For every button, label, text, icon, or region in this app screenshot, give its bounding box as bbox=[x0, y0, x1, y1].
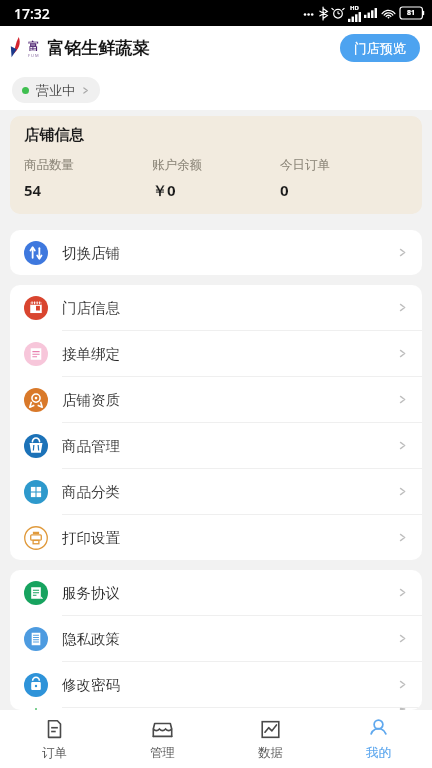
button[interactable]: 管理 bbox=[108, 710, 216, 768]
button[interactable]: 隐私政策 bbox=[10, 616, 422, 662]
staticText: 商品分类 bbox=[62, 483, 397, 501]
staticText: 订单 bbox=[42, 745, 67, 761]
button[interactable]: 门店信息 bbox=[10, 285, 422, 331]
staticText: 0 bbox=[280, 180, 289, 200]
staticText: 数据 bbox=[258, 745, 283, 761]
button[interactable]: 门店预览 bbox=[340, 34, 420, 62]
staticText: 我的 bbox=[366, 745, 391, 761]
staticText: 17:32 bbox=[14, 4, 50, 23]
staticText: 商品管理 bbox=[62, 437, 397, 455]
button[interactable]: 切换店铺 bbox=[10, 230, 422, 275]
staticText: 店铺资质 bbox=[62, 391, 397, 409]
button[interactable]: 店铺资质 bbox=[10, 377, 422, 423]
staticText: 富铭生鲜蔬菜 bbox=[47, 38, 149, 59]
staticText: F U M bbox=[28, 53, 39, 58]
button[interactable]: 订单 bbox=[0, 710, 108, 768]
staticText: 54 bbox=[24, 180, 42, 200]
button[interactable]: 打印设置 bbox=[10, 515, 422, 560]
button[interactable]: 商品分类 bbox=[10, 469, 422, 515]
button[interactable]: 修改密码 bbox=[10, 662, 422, 708]
staticText: 隐私政策 bbox=[62, 630, 397, 648]
staticText: 修改密码 bbox=[62, 676, 397, 694]
staticText: 门店信息 bbox=[62, 299, 397, 317]
staticText: 打印设置 bbox=[62, 529, 397, 547]
staticText: 今日订单 bbox=[280, 157, 330, 173]
staticText: 账户余额 bbox=[152, 157, 202, 173]
button[interactable]: 数据 bbox=[216, 710, 324, 768]
staticText: 门店预览 bbox=[354, 40, 406, 56]
staticText: 店铺信息 bbox=[24, 126, 84, 145]
staticText: 商品数量 bbox=[24, 157, 74, 173]
button[interactable]: 通知设置 bbox=[10, 708, 422, 710]
staticText: HD bbox=[350, 4, 359, 12]
staticText: 富 bbox=[28, 39, 39, 53]
button[interactable]: 我的 bbox=[324, 710, 432, 768]
staticText: 管理 bbox=[150, 745, 175, 761]
staticText: 营业中 bbox=[36, 82, 75, 98]
staticText: 81 bbox=[407, 8, 416, 18]
button[interactable]: 营业中 bbox=[12, 77, 100, 103]
staticText: ￥0 bbox=[152, 180, 176, 200]
button[interactable]: 服务协议 bbox=[10, 570, 422, 616]
staticText: 接单绑定 bbox=[62, 345, 397, 363]
button[interactable]: 商品管理 bbox=[10, 423, 422, 469]
staticText: 切换店铺 bbox=[62, 244, 397, 262]
button[interactable]: 接单绑定 bbox=[10, 331, 422, 377]
staticText: 服务协议 bbox=[62, 584, 397, 602]
